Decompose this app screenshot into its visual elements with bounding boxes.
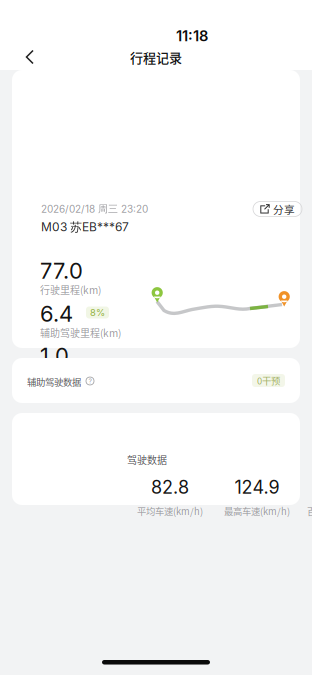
- staticText: 1.0: [40, 342, 69, 369]
- staticText: 2026/02/18 周三 23:20: [41, 202, 148, 215]
- staticText: 6.4: [40, 300, 73, 327]
- staticText: M03 苏EB***67: [41, 219, 129, 235]
- staticText: 辅助驾驶里程(km): [40, 325, 121, 340]
- button[interactable]: 分享: [253, 201, 302, 216]
- staticText: 11:18: [176, 27, 208, 45]
- staticText: 百公里能耗(kWh): [307, 504, 312, 518]
- staticText: 行驶里程(km): [40, 282, 101, 297]
- staticText: 辅助驾驶数据: [27, 375, 81, 388]
- button[interactable]: 返回: [12, 44, 48, 70]
- staticText: 77.0: [40, 257, 83, 284]
- staticText: ?: [88, 377, 91, 385]
- button[interactable]: 辅助驾驶数据: [12, 358, 300, 403]
- staticText: 驾驶数据: [127, 452, 167, 467]
- staticText: 82.8: [151, 476, 189, 498]
- staticText: 124.9: [234, 476, 279, 498]
- staticText: 平均车速(km/h): [137, 504, 203, 518]
- staticText: 行程时长(h): [40, 367, 92, 382]
- staticText: 0干预: [257, 374, 280, 387]
- staticText: 8%: [90, 307, 105, 318]
- staticText: 分享: [273, 201, 295, 217]
- staticText: 行程记录: [130, 47, 182, 66]
- staticText: 最高车速(km/h): [224, 504, 290, 518]
- staticText: 辅助驾驶: [207, 388, 251, 404]
